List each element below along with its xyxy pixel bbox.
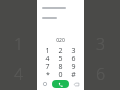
staticText: # xyxy=(71,70,76,78)
staticText: 1 xyxy=(14,33,24,55)
button[interactable]: 6 xyxy=(67,54,80,62)
button[interactable]: 9 xyxy=(67,62,80,70)
button[interactable]: Call xyxy=(52,80,69,88)
button[interactable]: 8 xyxy=(54,62,67,70)
staticText: 6 xyxy=(71,54,76,62)
staticText: 2 xyxy=(58,46,63,54)
button[interactable]: Backspace xyxy=(72,80,80,88)
staticText: 7 xyxy=(45,62,50,70)
staticText: 1 xyxy=(45,46,50,54)
button[interactable]: 3 xyxy=(67,46,80,54)
button[interactable] xyxy=(37,14,84,21)
staticText: 6 xyxy=(96,63,106,85)
button[interactable]: 020 xyxy=(37,36,84,44)
button[interactable]: 0 xyxy=(54,70,67,78)
button[interactable]: 1 xyxy=(41,46,54,54)
staticText: 020 xyxy=(56,37,65,44)
button[interactable]: 7 xyxy=(41,62,54,70)
staticText: 9 xyxy=(71,62,76,70)
button[interactable] xyxy=(37,4,84,11)
button[interactable]: # xyxy=(67,70,80,78)
staticText: 3 xyxy=(96,33,106,55)
staticText: 0 xyxy=(58,70,63,78)
button[interactable]: 2 xyxy=(54,46,67,54)
staticText: 3 xyxy=(71,46,76,54)
staticText: 5 xyxy=(58,54,63,62)
button[interactable]: 4 xyxy=(41,54,54,62)
button[interactable]: Add contact xyxy=(41,80,49,88)
staticText: * xyxy=(46,70,50,78)
button[interactable]: 5 xyxy=(54,54,67,62)
button[interactable]: * xyxy=(41,70,54,78)
staticText: 4 xyxy=(45,54,50,62)
staticText: 4 xyxy=(14,63,24,85)
staticText: 8 xyxy=(58,62,63,70)
